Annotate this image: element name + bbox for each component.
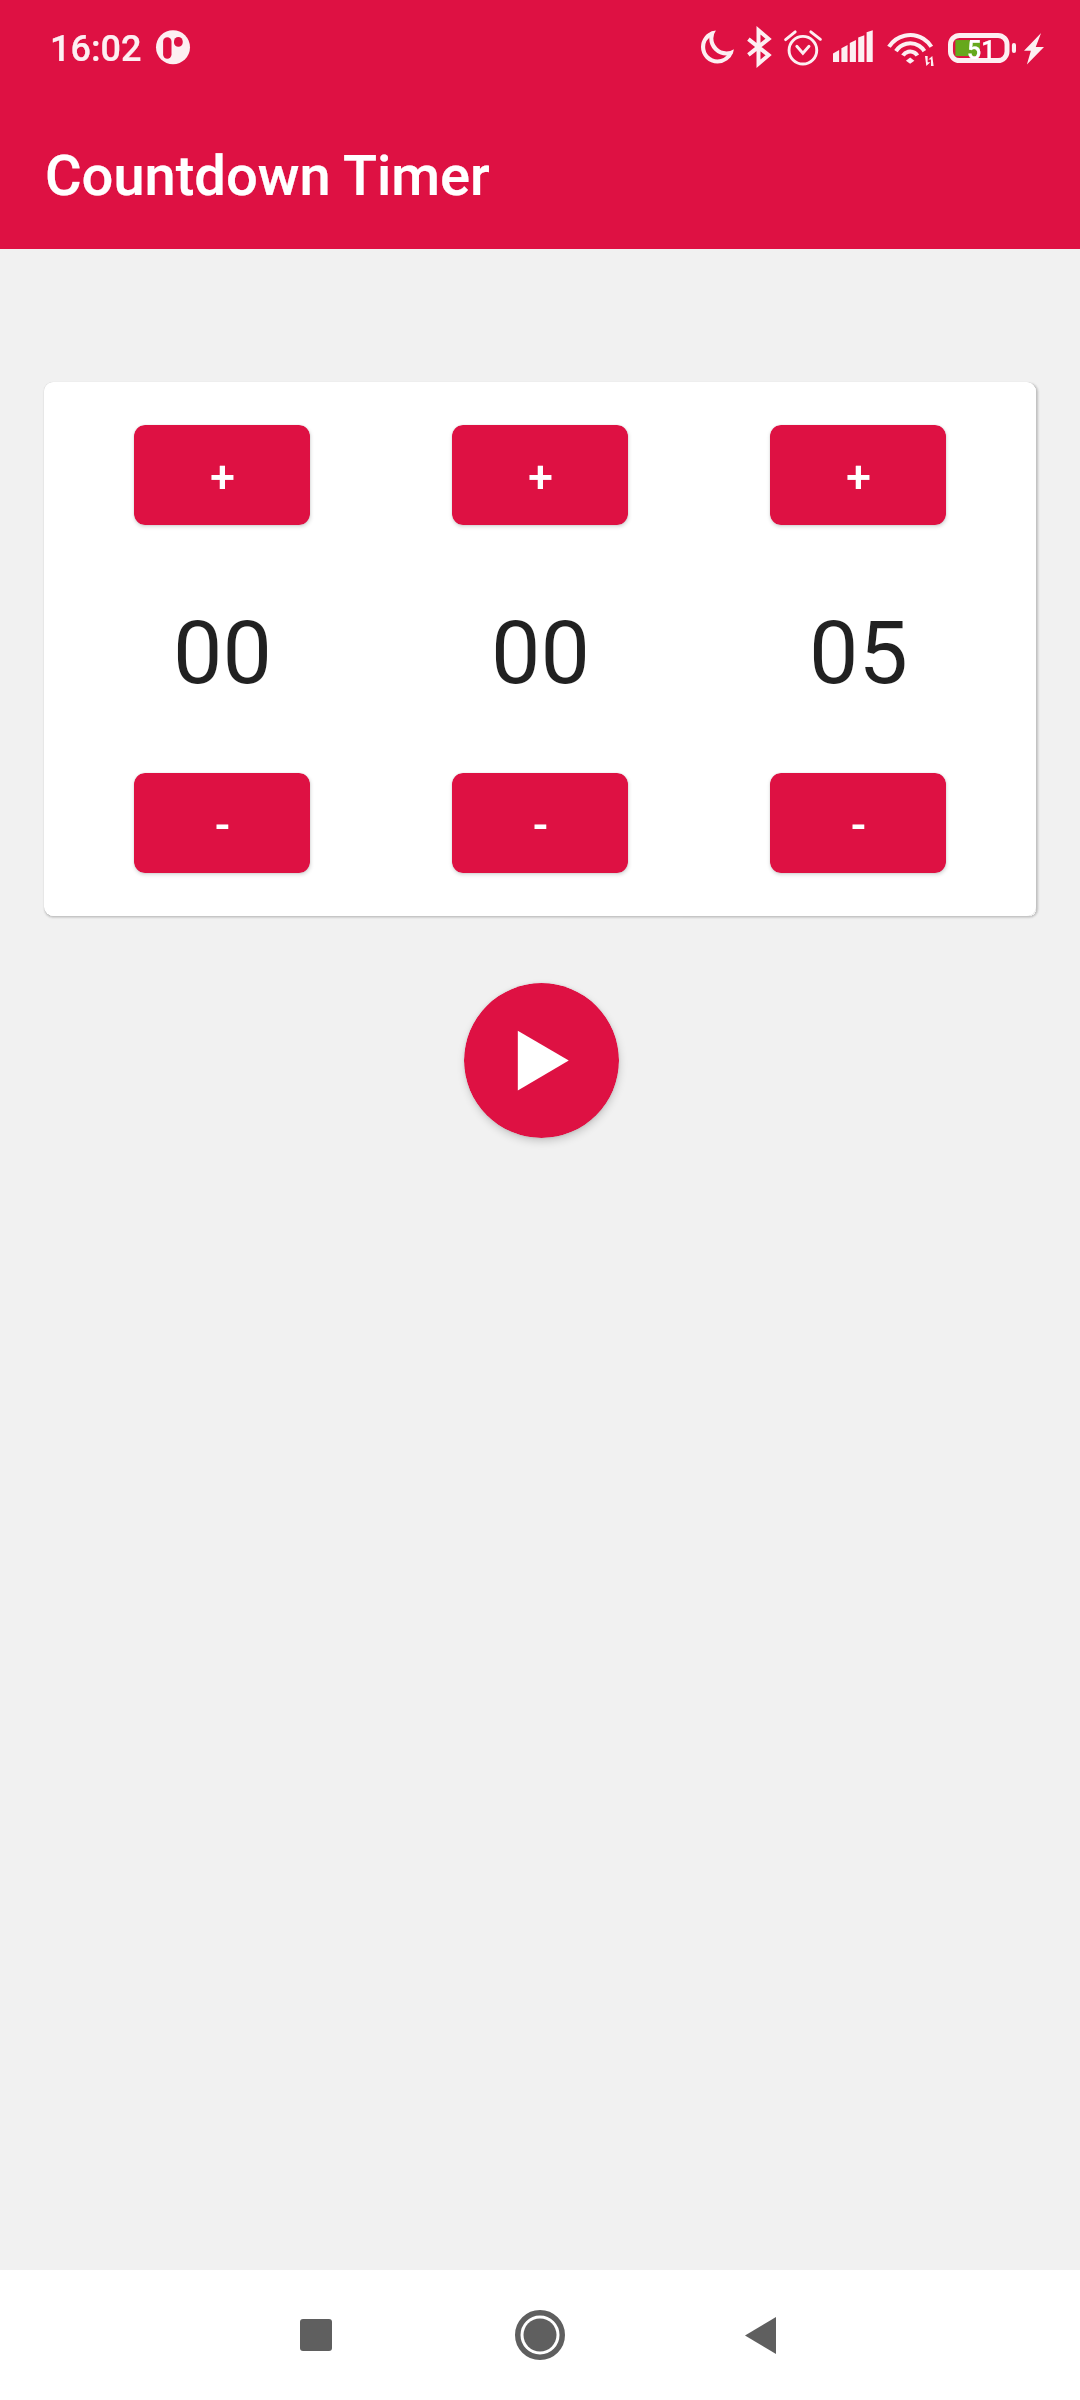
button[interactable]: Recents [271, 2290, 361, 2380]
button[interactable]: Back [715, 2290, 805, 2380]
staticText: - [851, 799, 866, 851]
staticText: Countdown Timer [45, 143, 490, 209]
staticText: 51 [967, 36, 996, 65]
staticText: 00 [491, 601, 590, 704]
button[interactable]: - [770, 773, 946, 873]
button[interactable]: + [770, 425, 946, 525]
button[interactable]: - [134, 773, 310, 873]
button[interactable]: + [452, 425, 628, 525]
button[interactable]: Start timer [464, 983, 619, 1138]
staticText: 05 [809, 601, 908, 704]
staticText: 00 [173, 601, 272, 704]
staticText: - [533, 799, 548, 851]
staticText: + [210, 451, 235, 503]
staticText: - [215, 799, 230, 851]
button[interactable]: Home [495, 2290, 585, 2380]
staticText: 16:02 [50, 28, 142, 70]
button[interactable]: + [134, 425, 310, 525]
button[interactable]: - [452, 773, 628, 873]
staticText: + [528, 451, 553, 503]
staticText: + [846, 451, 871, 503]
